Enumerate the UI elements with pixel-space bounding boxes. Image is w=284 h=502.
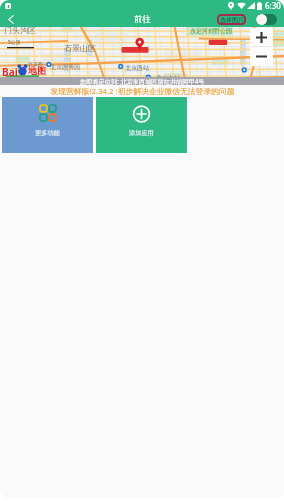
staticText: 北京园博园 <box>50 63 80 71</box>
button[interactable]: Zoom in <box>250 28 273 46</box>
staticText: 北京南站 <box>156 74 180 82</box>
staticText: 更多功能 <box>35 129 60 137</box>
button[interactable]: 更多功能 <box>2 97 93 153</box>
button[interactable]: Zoom out <box>250 47 273 65</box>
staticText: 6:30 <box>265 0 281 11</box>
staticText: 石景山区 <box>64 43 96 53</box>
staticText: 北京西 <box>28 61 43 67</box>
staticText: 您即将定位到: 北京市西城区前红井胡同甲4号 <box>80 77 205 85</box>
staticText: 永定河郊野公园 <box>190 27 232 35</box>
staticText: 地图 <box>28 65 46 76</box>
button[interactable]: Toggle switch <box>256 14 277 25</box>
staticText: 前往 <box>134 14 151 25</box>
button[interactable]: 选择图片 <box>217 14 246 25</box>
staticText: 门头沟区 <box>4 25 36 35</box>
staticText: 添加应用 <box>129 129 154 137</box>
staticText: 选择图片 <box>220 16 244 24</box>
staticText: Bai <box>2 65 18 79</box>
staticText: 发现营鲜版!2.34.2 :初步解决企业微信无法登录的问题 <box>50 86 235 97</box>
button[interactable]: 添加应用 <box>96 97 187 153</box>
staticText: 北京西站 <box>125 64 149 72</box>
staticText: 5公里 <box>8 39 21 46</box>
button[interactable]: Back <box>0 11 21 27</box>
